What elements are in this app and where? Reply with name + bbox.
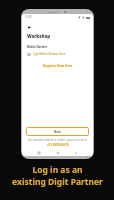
button[interactable]: Back xyxy=(74,151,78,155)
staticText: Type Mobile Number Here xyxy=(33,52,66,56)
staticText: existing Digit Partner xyxy=(12,176,103,188)
button[interactable]: Next xyxy=(26,127,89,136)
staticText: 10:30 xyxy=(25,15,32,19)
staticText: Next xyxy=(54,130,61,134)
staticText: Log in as an xyxy=(32,164,83,176)
staticText: +91-9876543210 xyxy=(47,143,69,147)
staticText: Mobile Number xyxy=(27,45,48,49)
button[interactable]: Back xyxy=(26,24,32,30)
staticText: Register New User xyxy=(43,64,73,68)
staticText: Workshop xyxy=(27,33,51,39)
staticText: For queries related to orders, give us a… xyxy=(28,138,87,142)
button[interactable]: Home xyxy=(56,151,60,155)
button[interactable]: Register New User xyxy=(27,64,88,68)
button[interactable]: Recent apps xyxy=(37,151,41,155)
